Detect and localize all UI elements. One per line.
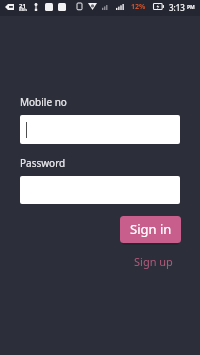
button[interactable]: Sign in — [120, 216, 181, 243]
staticText: 12% — [131, 2, 146, 12]
staticText: KB/s — [19, 7, 28, 12]
button[interactable]: Mobile no input field — [20, 115, 180, 144]
staticText: 21 — [19, 2, 26, 10]
button[interactable]: Password input field — [20, 176, 180, 204]
staticText: Mobile no — [20, 95, 67, 109]
staticText: Sign up — [134, 254, 173, 269]
staticText: PM — [187, 4, 195, 11]
staticText: Sign in — [130, 220, 172, 238]
button[interactable]: Sign up — [128, 250, 179, 273]
staticText: 3:13 — [169, 2, 185, 13]
staticText: Password — [20, 156, 66, 170]
